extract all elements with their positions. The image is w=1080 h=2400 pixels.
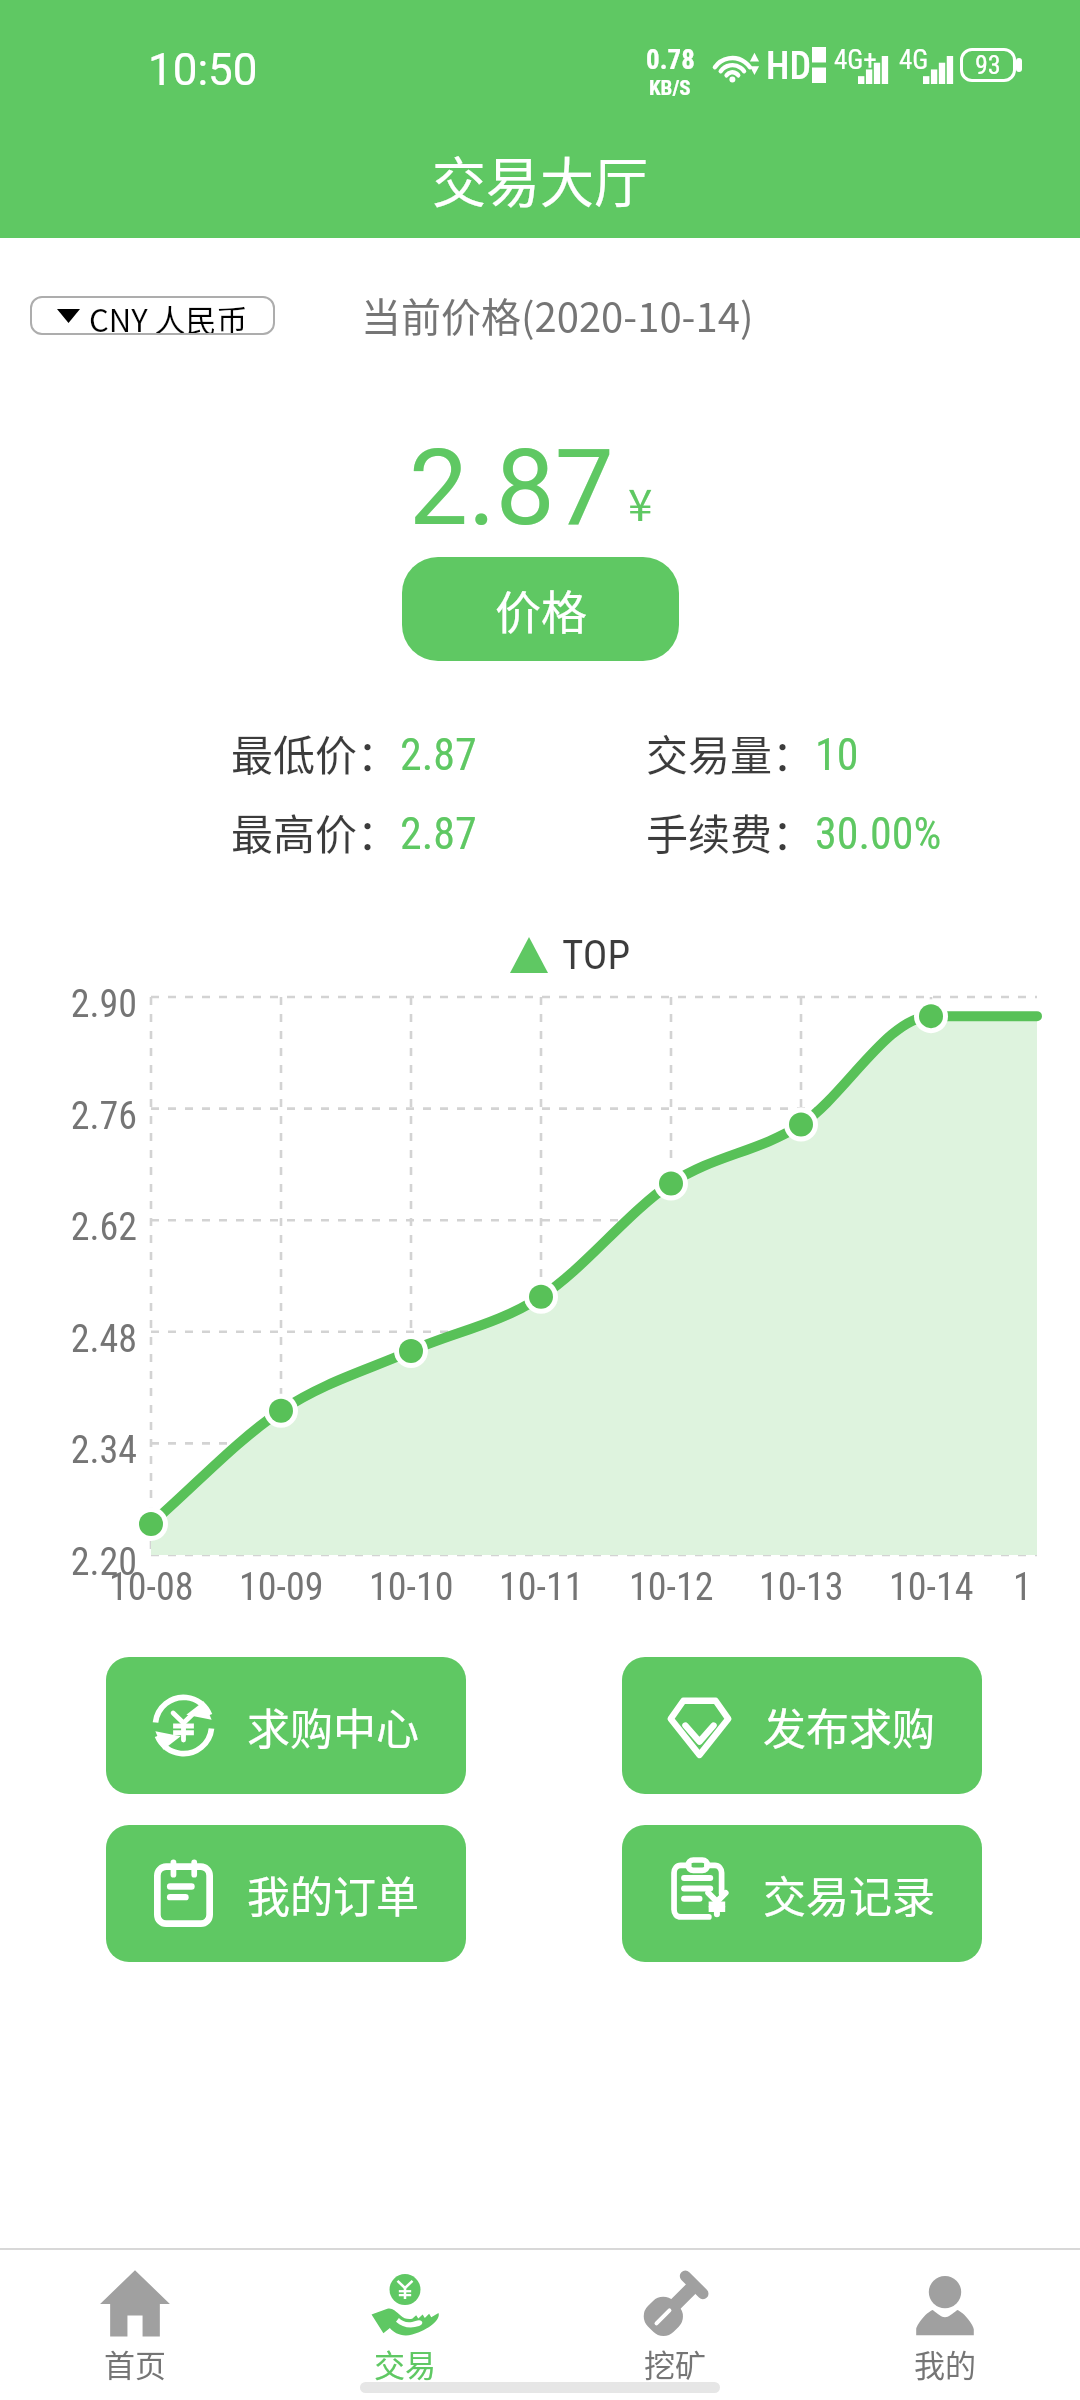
button[interactable]: 求购中心 (106, 1657, 466, 1794)
staticText: 2.87 (400, 808, 477, 860)
button[interactable]: 发布求购 (622, 1657, 982, 1794)
button[interactable]: 交易 (270, 2250, 540, 2400)
button[interactable]: 首页 (0, 2250, 270, 2400)
staticText: 10-10 (369, 1565, 454, 1610)
staticText: 2.62 (0, 1205, 137, 1250)
staticText: 2.87 (400, 729, 477, 781)
staticText: 我的订单 (247, 1863, 419, 1925)
staticText: 挖矿 (644, 2341, 706, 2386)
staticText: 4G+ (834, 44, 877, 76)
staticText: 手续费： (646, 801, 815, 862)
staticText: 2.76 (0, 1094, 137, 1139)
staticText: 价格 (495, 576, 587, 643)
staticText: 10-12 (629, 1565, 714, 1610)
staticText: 10 (815, 729, 859, 781)
staticText: 首页 (104, 2341, 166, 2386)
button[interactable]: 价格 (402, 557, 679, 661)
button[interactable]: 我的订单 (106, 1825, 466, 1962)
staticText: ¥ (628, 470, 653, 534)
staticText: 10-13 (759, 1565, 844, 1610)
staticText: 10:50 (148, 44, 258, 96)
button[interactable]: CNY 人民币 (30, 296, 275, 335)
staticText: KB/S (649, 76, 691, 101)
staticText: 2.90 (0, 982, 137, 1027)
staticText: 当前价格(2020-10-14) (361, 286, 754, 344)
staticText: CNY 人民币 (89, 296, 248, 335)
staticText: 最高价： (231, 801, 400, 862)
staticText: 10-11 (499, 1565, 584, 1610)
staticText: 最低价： (231, 722, 400, 783)
staticText: 0.78 (646, 44, 695, 76)
staticText: 4G (899, 44, 929, 76)
staticText: 我的 (914, 2341, 976, 2386)
staticText: 30.00% (815, 808, 942, 860)
staticText: 交易大厅 (432, 140, 648, 218)
staticText: HD (766, 44, 812, 89)
staticText: 1 (1013, 1565, 1032, 1610)
staticText: 10-14 (889, 1565, 974, 1610)
staticText: 2.20 (0, 1540, 137, 1585)
staticText: 交易量： (646, 722, 815, 783)
staticText: 2.48 (0, 1317, 137, 1362)
staticText: 2.87 (409, 427, 614, 550)
staticText: TOP (562, 931, 631, 979)
button[interactable]: 挖矿 (540, 2250, 810, 2400)
button[interactable]: 我的 (810, 2250, 1080, 2400)
staticText: 求购中心 (247, 1695, 419, 1757)
button[interactable]: 交易记录 (622, 1825, 982, 1962)
staticText: 10-08 (109, 1565, 194, 1610)
staticText: 2.34 (0, 1428, 137, 1473)
staticText: 10-09 (239, 1565, 324, 1610)
staticText: 发布求购 (763, 1695, 935, 1757)
staticText: 交易 (374, 2341, 436, 2386)
staticText: 93 (975, 50, 1001, 80)
staticText: 交易记录 (763, 1863, 935, 1925)
